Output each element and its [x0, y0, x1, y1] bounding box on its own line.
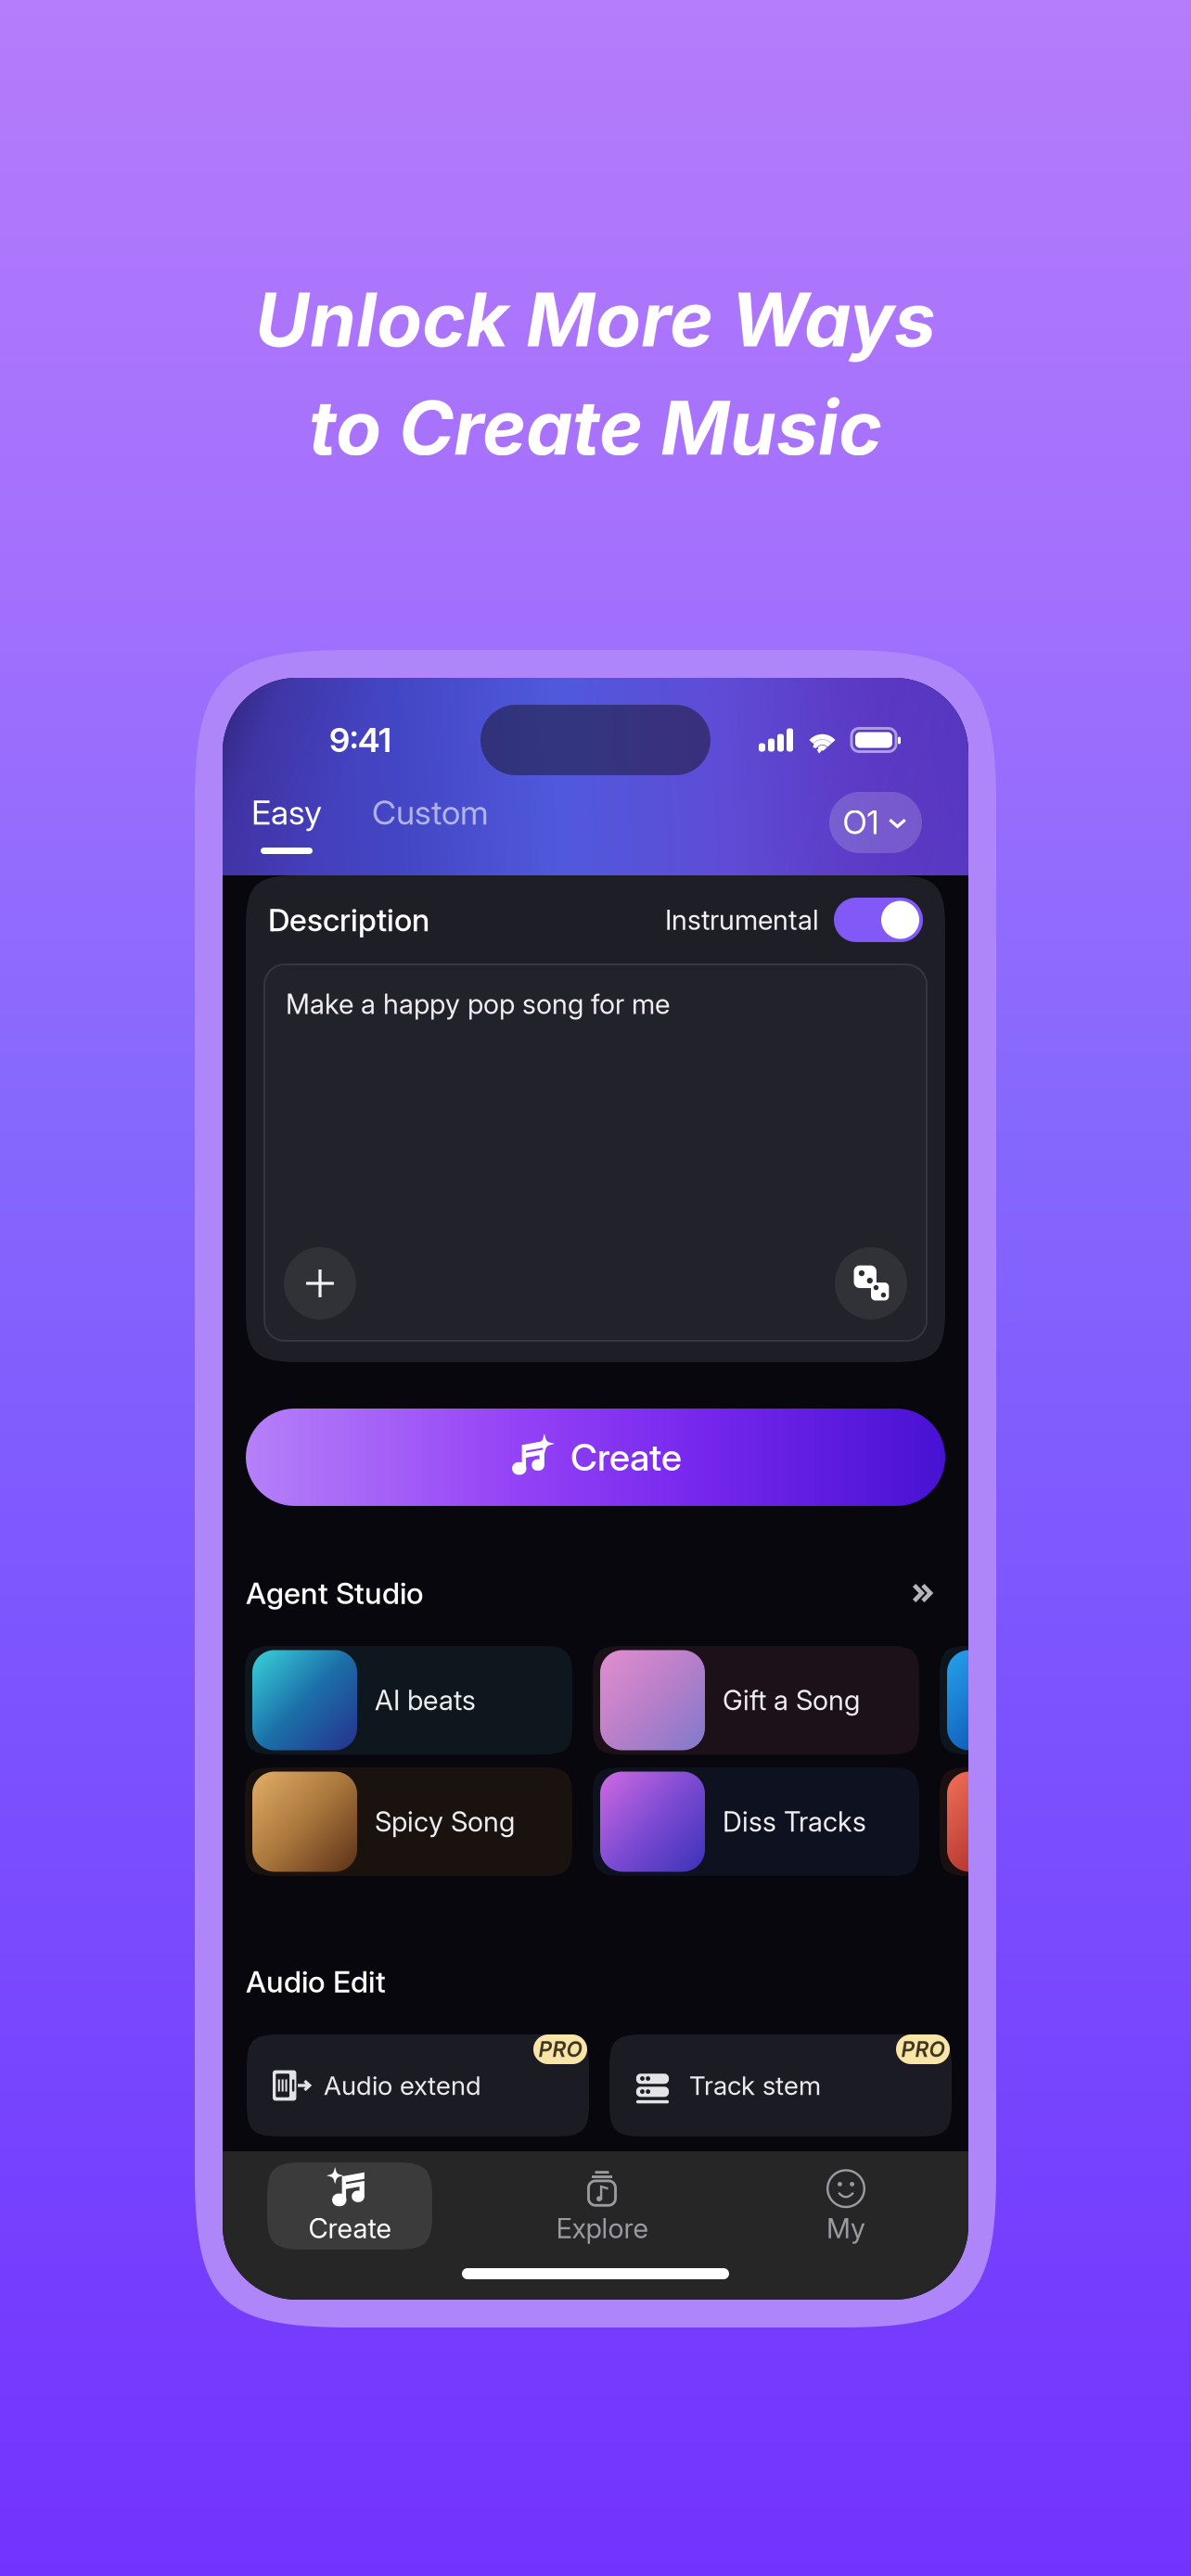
button[interactable]	[940, 1646, 1032, 1754]
staticText: Create	[570, 1435, 682, 1480]
button[interactable]: Audio extend	[247, 2034, 589, 2136]
staticText: Gift a Song	[723, 1684, 860, 1717]
staticText: Instrumental	[665, 903, 819, 936]
button[interactable]: Shuffle prompt	[835, 1247, 907, 1320]
staticText: Easy	[251, 792, 322, 833]
staticText: My	[826, 2212, 865, 2245]
button[interactable]: Gift a Song	[593, 1646, 919, 1754]
button[interactable]: Create	[246, 1409, 945, 1506]
staticText: PRO	[538, 2037, 582, 2062]
button[interactable]: My	[772, 2162, 920, 2250]
staticText: Agent Studio	[246, 1575, 424, 1611]
staticText: O1	[843, 803, 879, 842]
staticText: to Create Music	[309, 383, 882, 473]
button[interactable]: Track stem	[609, 2034, 952, 2136]
button[interactable]: Spicy Song	[245, 1767, 572, 1876]
button[interactable]	[940, 1767, 1032, 1876]
button[interactable]: Diss Tracks	[593, 1767, 919, 1876]
staticText: Create	[308, 2212, 391, 2245]
button[interactable]: Custom	[322, 792, 489, 854]
staticText: Audio Edit	[246, 1964, 386, 2000]
button[interactable]: Instrumental toggle	[834, 898, 923, 942]
staticText: Spicy Song	[375, 1805, 515, 1838]
staticText: Description	[268, 901, 429, 939]
staticText: 9:41	[329, 720, 391, 760]
button[interactable]: Model O1	[829, 792, 968, 854]
button[interactable]: Create	[267, 2162, 432, 2250]
button[interactable]: Explore	[528, 2162, 676, 2250]
staticText: Track stem	[689, 2070, 821, 2101]
staticText: Make a happy pop song for me	[286, 988, 670, 1020]
staticText: Diss Tracks	[723, 1805, 866, 1838]
button[interactable]: AI beats	[245, 1646, 572, 1754]
staticText: Audio extend	[324, 2070, 481, 2101]
staticText: Custom	[372, 792, 489, 833]
staticText: AI beats	[375, 1684, 476, 1717]
staticText: Unlock More Ways	[255, 274, 936, 364]
button[interactable]: Easy	[223, 792, 322, 854]
button[interactable]: Add attachment	[284, 1247, 356, 1320]
staticText: Explore	[556, 2212, 648, 2245]
button[interactable]: See all Agent Studio	[899, 1570, 945, 1616]
staticText: PRO	[901, 2037, 945, 2062]
